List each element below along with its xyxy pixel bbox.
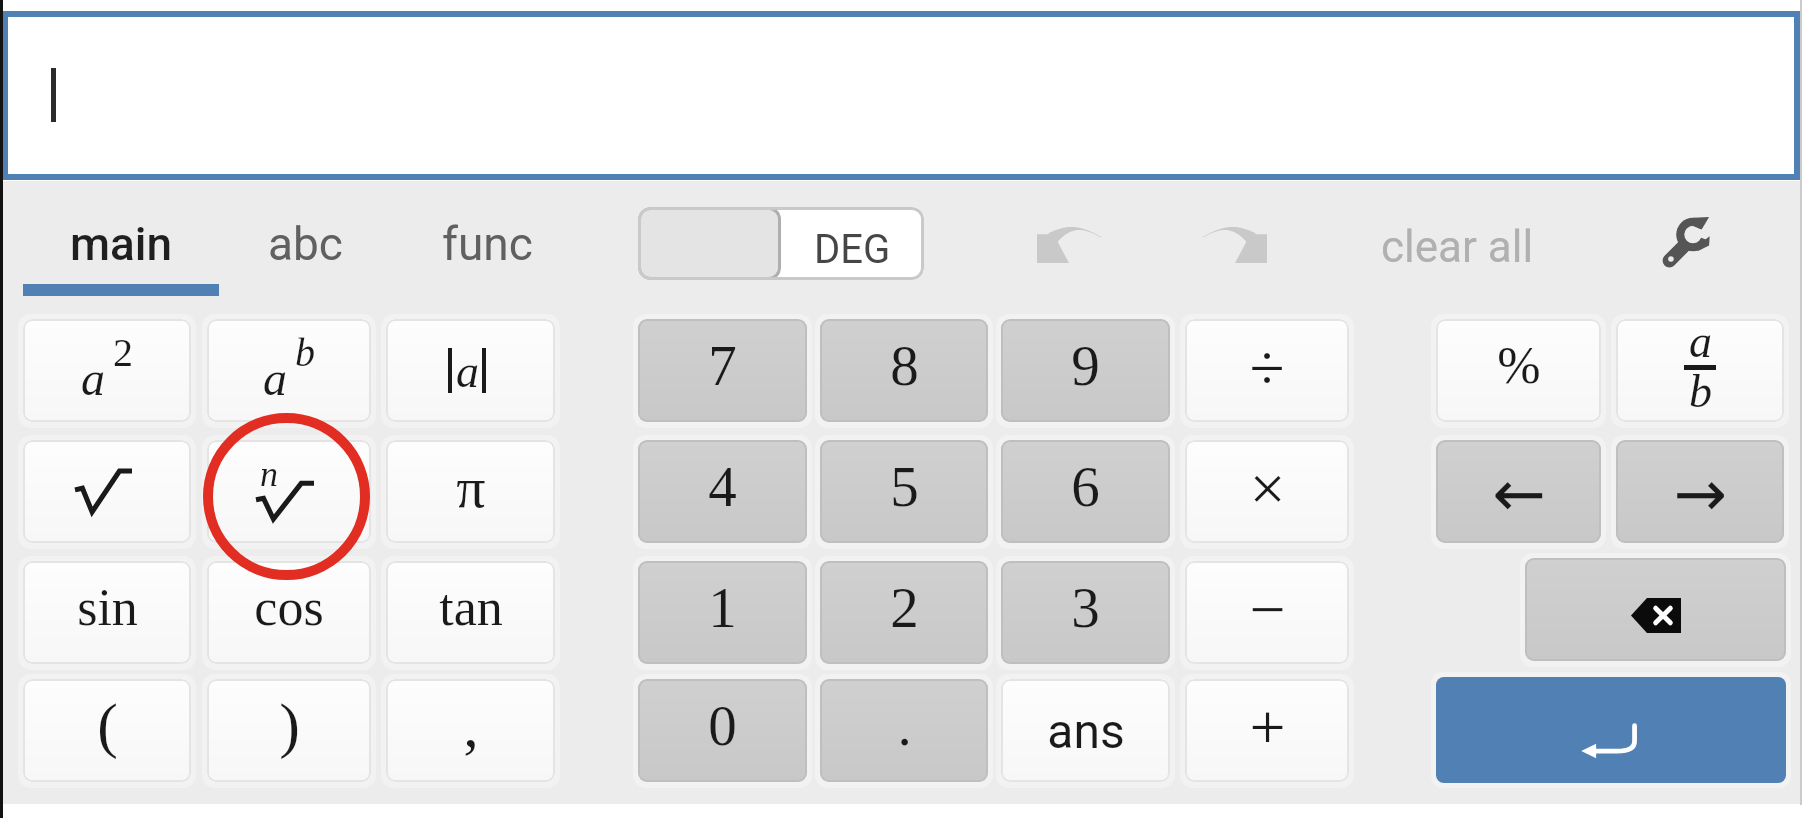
staticText: a [81, 352, 105, 405]
staticText: π [456, 455, 486, 519]
button[interactable]: sin [23, 561, 191, 664]
staticText: a [1689, 319, 1712, 367]
button[interactable]: main [23, 184, 219, 296]
button[interactable]: Settings [1657, 211, 1719, 273]
button[interactable]: , [386, 679, 555, 782]
staticText: 4 [708, 455, 737, 518]
button[interactable]: Enter [1436, 677, 1786, 783]
staticText: DEG [814, 226, 891, 273]
button[interactable]: 4 [638, 440, 807, 543]
button[interactable]: 5 [820, 440, 988, 543]
button[interactable]: a [207, 319, 371, 422]
staticText: + [1249, 692, 1286, 763]
staticText: 8 [890, 334, 919, 397]
button[interactable]: 6 [1001, 440, 1170, 543]
staticText: b [1689, 366, 1712, 417]
button[interactable] [2, 11, 1800, 180]
staticText: . [897, 694, 912, 757]
staticText: n [260, 454, 278, 494]
staticText: 1 [708, 576, 737, 639]
button[interactable]: Undo [1037, 227, 1101, 263]
staticText: % [1497, 337, 1541, 395]
staticText: 9 [1071, 334, 1100, 397]
button[interactable]: 7 [638, 319, 807, 422]
button[interactable]: Redo [1203, 227, 1267, 263]
staticText: ÷ [1249, 332, 1285, 403]
button[interactable]: abc [218, 184, 392, 296]
staticText: × [1249, 453, 1286, 524]
button[interactable] [23, 440, 191, 543]
button[interactable]: ans [1001, 679, 1170, 782]
button[interactable]: DEG [638, 207, 924, 280]
button[interactable]: cos [207, 561, 371, 664]
button[interactable]: 8 [820, 319, 988, 422]
staticText: cos [254, 579, 324, 637]
button[interactable]: 3 [1001, 561, 1170, 664]
button[interactable]: a [23, 319, 191, 422]
staticText: 2 [113, 330, 133, 374]
staticText: func [442, 217, 533, 271]
staticText: abc [268, 217, 343, 271]
staticText: − [1249, 574, 1286, 645]
staticText: ans [1047, 703, 1125, 759]
button[interactable]: + [1185, 679, 1349, 782]
staticText: clear all [1381, 221, 1534, 273]
staticText: , [463, 691, 479, 760]
staticText: sin [77, 579, 138, 637]
staticText: ← [1492, 457, 1546, 532]
button[interactable]: func [394, 184, 580, 296]
button[interactable]: → [1616, 440, 1784, 543]
button[interactable]: 9 [1001, 319, 1170, 422]
button[interactable]: ) [207, 679, 371, 782]
staticText: 6 [1071, 455, 1100, 518]
staticText: 0 [708, 694, 737, 757]
button[interactable]: ( [23, 679, 191, 782]
staticText: 5 [890, 455, 919, 518]
staticText: main [70, 217, 173, 271]
button[interactable]: Backspace [1525, 558, 1786, 661]
staticText: b [295, 330, 315, 374]
button[interactable]: . [820, 679, 988, 782]
staticText: tan [439, 579, 503, 637]
staticText: a [263, 352, 287, 405]
button[interactable]: clear all [1342, 199, 1572, 287]
button[interactable]: % [1436, 319, 1601, 422]
button[interactable]: a [386, 319, 555, 422]
button[interactable]: 0 [638, 679, 807, 782]
button[interactable]: ÷ [1185, 319, 1349, 422]
button[interactable]: π [386, 440, 555, 543]
staticText: 2 [890, 576, 919, 639]
staticText: 3 [1071, 576, 1100, 639]
button[interactable]: tan [386, 561, 555, 664]
button[interactable]: 2 [820, 561, 988, 664]
button[interactable]: a [1616, 319, 1784, 422]
staticText: a [456, 346, 479, 391]
button[interactable]: − [1185, 561, 1349, 664]
staticText: ( [97, 691, 118, 760]
staticText: → [1673, 457, 1727, 532]
staticText: 7 [708, 334, 737, 397]
button[interactable]: ← [1436, 440, 1601, 543]
staticText: ) [279, 691, 300, 760]
button[interactable]: n [207, 440, 371, 543]
button[interactable]: × [1185, 440, 1349, 543]
button[interactable]: 1 [638, 561, 807, 664]
